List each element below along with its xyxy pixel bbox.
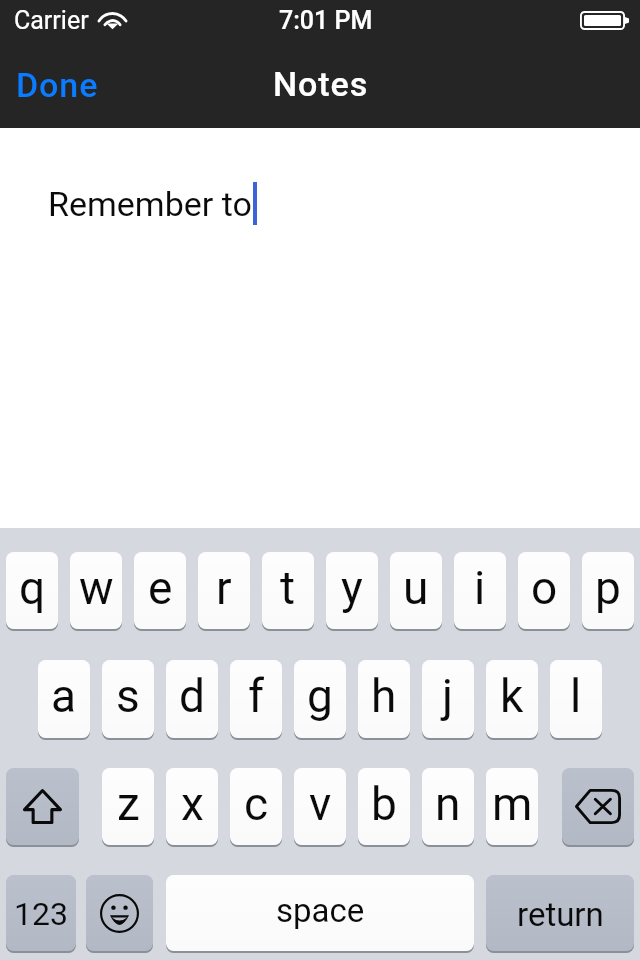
button[interactable]: y [326, 552, 378, 629]
staticText: Done [16, 65, 99, 105]
button[interactable]: d [166, 660, 218, 738]
button[interactable]: Backspace [562, 768, 634, 845]
button[interactable]: t [262, 552, 314, 629]
staticText: j [442, 669, 454, 723]
staticText: u [403, 561, 429, 615]
staticText: f [248, 669, 264, 723]
staticText: i [474, 561, 486, 615]
button[interactable]: b [358, 768, 410, 845]
staticText: k [500, 669, 524, 723]
staticText: 123 [14, 895, 68, 933]
staticText: r [216, 561, 232, 615]
button[interactable]: h [358, 660, 410, 738]
staticText: q [19, 561, 46, 615]
button[interactable]: Emoji [86, 875, 153, 951]
button[interactable]: c [230, 768, 282, 845]
button[interactable]: k [486, 660, 538, 738]
button[interactable]: l [550, 660, 602, 738]
button[interactable]: j [422, 660, 474, 738]
button[interactable]: g [294, 660, 346, 738]
staticText: g [307, 669, 333, 723]
button[interactable]: m [486, 768, 538, 845]
button[interactable]: Note text [0, 128, 640, 528]
button[interactable]: w [70, 552, 122, 629]
staticText: e [148, 561, 173, 615]
staticText: return [517, 895, 604, 934]
button[interactable]: o [518, 552, 570, 629]
button[interactable]: q [6, 552, 58, 629]
staticText: n [435, 777, 461, 831]
button[interactable]: s [102, 660, 154, 738]
staticText: s [116, 669, 140, 723]
button[interactable]: return [486, 875, 634, 951]
button[interactable]: a [38, 660, 90, 738]
button[interactable]: Shift [6, 768, 79, 845]
staticText: Carrier [14, 6, 89, 35]
staticText: Notes [273, 64, 369, 104]
button[interactable]: i [454, 552, 506, 629]
button[interactable]: r [198, 552, 250, 629]
staticText: w [79, 561, 114, 615]
button[interactable]: n [422, 768, 474, 845]
button[interactable]: e [134, 552, 186, 629]
button[interactable]: v [294, 768, 346, 845]
staticText: a [51, 669, 77, 723]
staticText: 7:01 PM [279, 6, 373, 35]
staticText: b [371, 777, 397, 831]
staticText: o [531, 561, 558, 615]
staticText: h [371, 669, 397, 723]
staticText: c [244, 777, 269, 831]
button[interactable]: x [166, 768, 218, 845]
staticText: z [117, 777, 140, 831]
staticText: v [309, 777, 332, 831]
staticText: p [595, 561, 621, 615]
button[interactable]: u [390, 552, 442, 629]
button[interactable]: Done [1, 57, 114, 113]
button[interactable]: space [166, 875, 474, 951]
staticText: l [570, 669, 582, 723]
staticText: t [280, 561, 296, 615]
staticText: x [181, 777, 204, 831]
button[interactable]: f [230, 660, 282, 738]
staticText: d [179, 669, 205, 723]
staticText: space [276, 891, 365, 930]
button[interactable]: z [102, 768, 154, 845]
staticText: Remember to [48, 184, 252, 224]
staticText: y [341, 561, 363, 615]
button[interactable]: p [582, 552, 634, 629]
button[interactable]: 123 [6, 875, 76, 951]
staticText: m [492, 777, 533, 831]
